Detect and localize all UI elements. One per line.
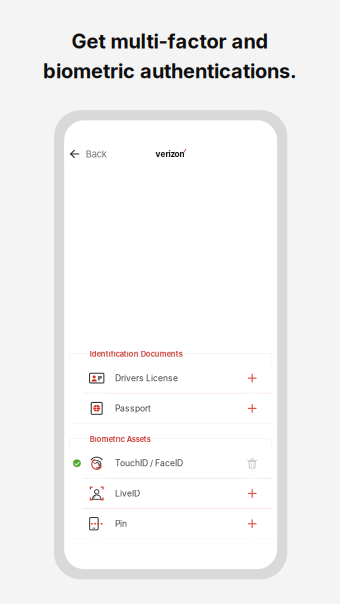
staticText: verizon <box>155 149 184 159</box>
button[interactable]: Pin <box>69 509 272 538</box>
button[interactable]: Drivers License <box>69 363 272 393</box>
staticText: Back <box>86 148 107 160</box>
button[interactable]: Back <box>63 143 118 165</box>
staticText: biometric authentications. <box>43 59 297 83</box>
staticText: Biometric Assets <box>90 435 151 444</box>
button[interactable]: LiveID <box>69 479 272 508</box>
staticText: Pin <box>115 519 127 529</box>
staticText: Identification Documents <box>90 350 183 359</box>
button[interactable]: TouchID / FaceID <box>69 448 272 478</box>
staticText: Passport <box>115 403 151 413</box>
staticText: LiveID <box>115 488 140 499</box>
button[interactable]: Passport <box>69 394 272 423</box>
staticText: Drivers License <box>115 373 178 383</box>
staticText: Get multi-factor and <box>71 29 268 53</box>
staticText: TouchID / FaceID <box>115 458 183 468</box>
